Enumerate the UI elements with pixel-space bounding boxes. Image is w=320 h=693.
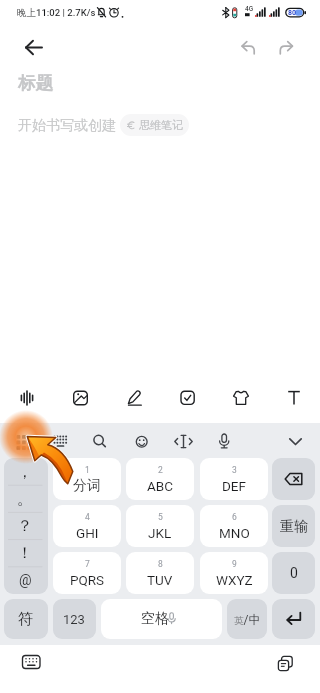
button[interactable] — [272, 458, 315, 500]
button[interactable] — [210, 427, 238, 455]
button[interactable] — [8, 427, 36, 455]
staticText: JKL — [148, 525, 172, 541]
button[interactable] — [236, 38, 260, 58]
button[interactable] — [282, 427, 310, 455]
staticText: PQRS — [70, 572, 105, 588]
staticText: 思维笔记 — [139, 118, 183, 132]
staticText: 3 — [232, 465, 237, 475]
button[interactable] — [126, 505, 194, 547]
button[interactable] — [53, 599, 96, 639]
staticText: ？ — [17, 516, 33, 536]
button[interactable] — [53, 552, 121, 594]
staticText: @ — [19, 572, 32, 588]
staticText: 4 — [85, 512, 90, 522]
button[interactable] — [272, 599, 315, 639]
staticText: 80 — [288, 9, 297, 17]
button[interactable] — [170, 427, 198, 455]
staticText: 重输 — [280, 518, 308, 536]
staticText: 1 — [85, 465, 90, 475]
button[interactable] — [200, 458, 268, 500]
staticText: 标题 — [18, 72, 53, 94]
button[interactable] — [4, 599, 48, 639]
button[interactable] — [20, 652, 44, 674]
staticText: MNO — [219, 525, 250, 541]
button[interactable] — [173, 384, 201, 412]
staticText: WXYZ — [216, 572, 253, 588]
button[interactable] — [126, 458, 194, 500]
button[interactable] — [227, 599, 267, 639]
staticText: ， — [17, 462, 33, 482]
button[interactable] — [66, 384, 94, 412]
button[interactable] — [101, 599, 222, 639]
button[interactable] — [46, 427, 74, 455]
button[interactable] — [126, 552, 194, 594]
button[interactable] — [200, 505, 268, 547]
staticText: 8 — [158, 559, 163, 569]
staticText: 开始书写或创建 — [18, 117, 116, 135]
button[interactable]: 思维笔记 — [120, 114, 189, 136]
button[interactable] — [280, 384, 308, 412]
button[interactable] — [128, 427, 156, 455]
staticText: 2 — [158, 465, 163, 475]
button[interactable] — [200, 552, 268, 594]
staticText: GHI — [76, 525, 99, 541]
staticText: DEF — [222, 478, 246, 494]
staticText: 5 — [158, 512, 163, 522]
staticText: 分词 — [73, 477, 101, 495]
button[interactable] — [120, 384, 148, 412]
button[interactable] — [272, 505, 315, 547]
staticText: 符 — [18, 610, 33, 629]
button[interactable] — [275, 652, 297, 674]
button[interactable] — [53, 458, 121, 500]
button[interactable] — [13, 384, 41, 412]
staticText: 英/中 — [234, 612, 261, 627]
staticText: 7 — [85, 559, 90, 569]
staticText: 0 — [290, 565, 298, 581]
button[interactable] — [18, 36, 50, 60]
button[interactable] — [274, 38, 298, 58]
staticText: 晚上11:02 | 2.7K/s — [17, 7, 96, 19]
staticText: 123 — [63, 612, 85, 627]
staticText: 4G — [245, 5, 254, 13]
staticText: 9 — [232, 559, 237, 569]
button[interactable] — [227, 384, 255, 412]
button[interactable] — [86, 427, 114, 455]
button[interactable] — [272, 552, 315, 594]
staticText: 6 — [232, 512, 237, 522]
staticText: ABC — [147, 478, 174, 494]
button[interactable] — [53, 505, 121, 547]
button[interactable] — [4, 458, 48, 594]
staticText: TUV — [147, 572, 173, 588]
staticText: ！ — [17, 543, 33, 563]
staticText: 。 — [17, 489, 33, 509]
staticText: 空格 — [141, 610, 169, 628]
